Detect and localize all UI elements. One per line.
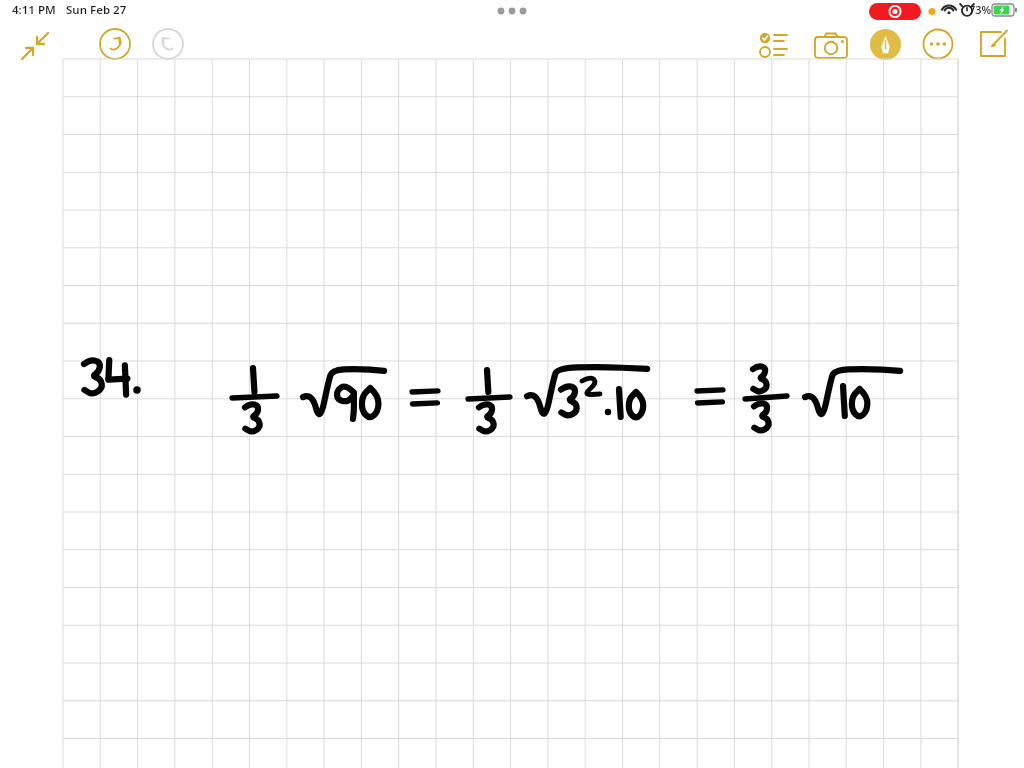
button[interactable]: Collapse [14, 28, 50, 64]
button[interactable]: More options [922, 28, 954, 60]
button[interactable]: Undo [98, 27, 132, 61]
button[interactable]: Checklist [757, 28, 791, 62]
button[interactable]: New note [977, 28, 1009, 60]
button[interactable]: Redo [151, 27, 185, 61]
button[interactable]: Pen tool [870, 29, 901, 60]
staticText: 73% [969, 2, 992, 17]
staticText: 4:11 PM [12, 2, 56, 18]
staticText: Sun Feb 27 [66, 2, 127, 18]
button[interactable]: Camera [813, 28, 849, 64]
